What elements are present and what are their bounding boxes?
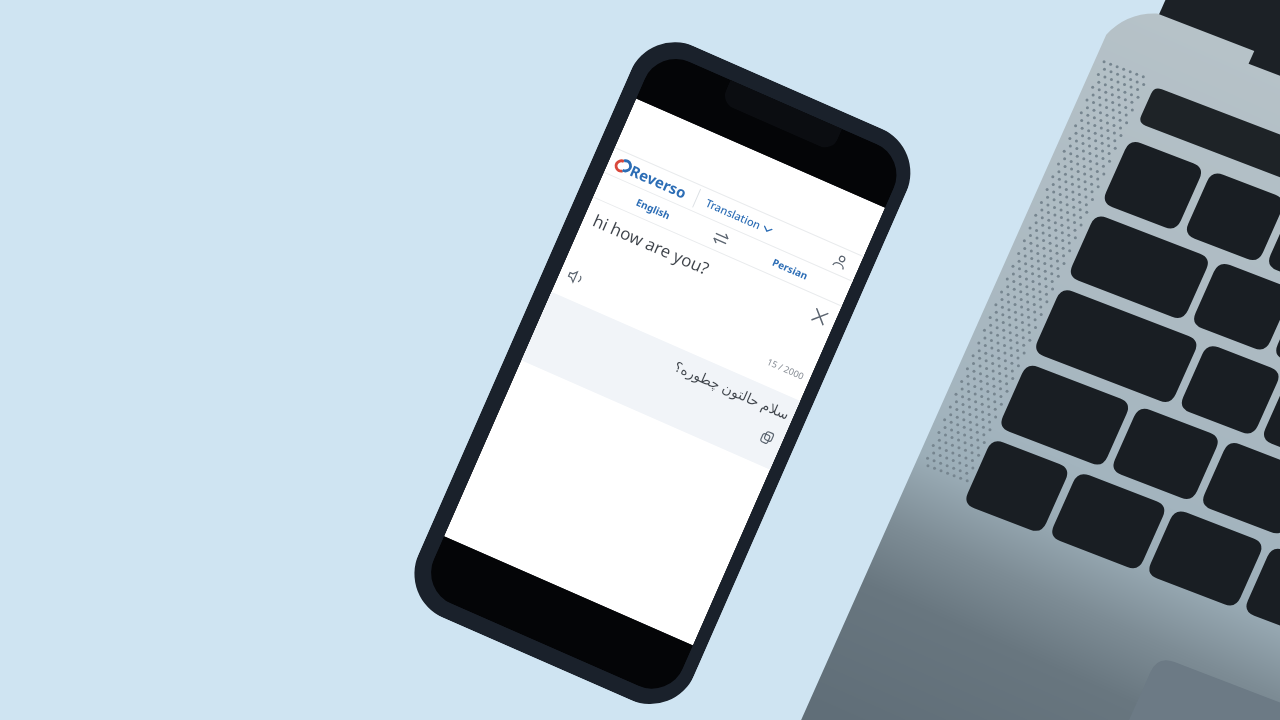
button[interactable]: Listen xyxy=(561,262,589,290)
button[interactable]: Account xyxy=(825,247,854,276)
staticText: hi how are you? xyxy=(589,209,713,280)
button[interactable]: Translation xyxy=(703,195,774,237)
button[interactable]: Clear text xyxy=(806,302,833,330)
button[interactable]: Copy translation xyxy=(754,423,781,451)
staticText: Translation xyxy=(703,195,763,232)
button[interactable]: Persian xyxy=(729,231,853,306)
staticText: سلام حالتون چطوره؟ xyxy=(671,356,793,424)
staticText: English xyxy=(634,195,673,222)
button[interactable]: English xyxy=(593,172,714,245)
staticText: Persian xyxy=(770,255,811,283)
button[interactable]: Reverso xyxy=(612,154,690,203)
staticText: 15 / 2000 xyxy=(765,355,806,382)
button[interactable]: Swap languages xyxy=(703,220,739,256)
staticText: Reverso xyxy=(627,160,690,203)
